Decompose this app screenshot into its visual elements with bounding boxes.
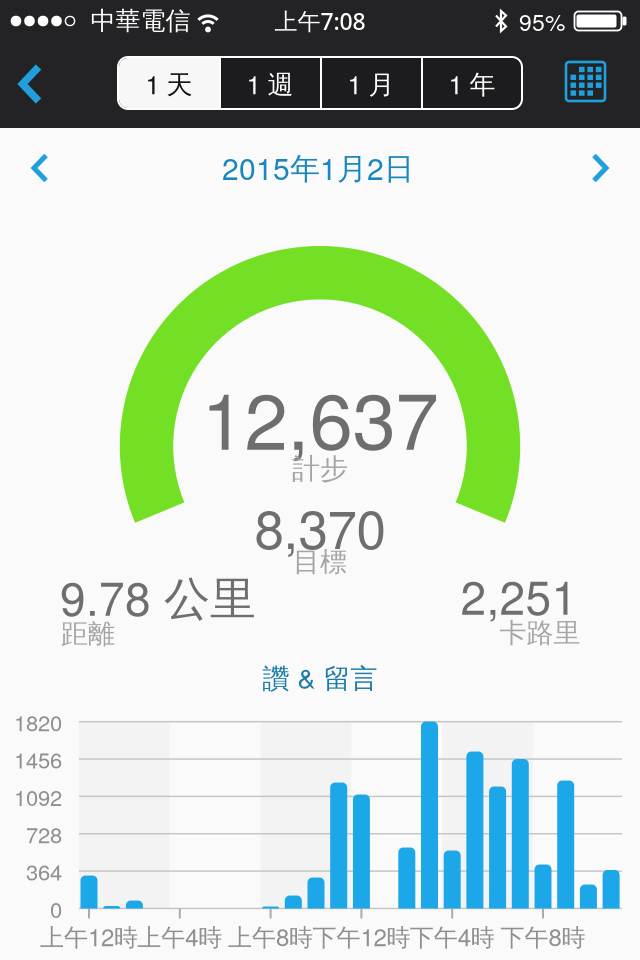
button[interactable] xyxy=(30,151,52,184)
button[interactable]: 1 週 xyxy=(219,57,320,109)
staticText: 1 週 xyxy=(246,64,293,102)
staticText: 計步 xyxy=(292,451,348,487)
staticText: 上午4時 xyxy=(137,919,222,953)
staticText: 2015年1月2日 xyxy=(222,145,414,188)
button[interactable]: 1 天 xyxy=(118,57,219,109)
staticText: 12,637 xyxy=(201,360,438,472)
staticText: 8,370 xyxy=(254,488,385,564)
staticText: 上午7:08 xyxy=(274,5,365,37)
staticText: 95% xyxy=(519,4,565,37)
button[interactable]: 1 年 xyxy=(421,57,522,109)
staticText: 9.78 公里 xyxy=(60,563,256,629)
staticText: 728 xyxy=(26,818,62,849)
staticText: 1 月 xyxy=(347,64,394,102)
button[interactable]: 讚 & 留言 xyxy=(254,658,385,696)
staticText: 上午8時 xyxy=(228,919,313,953)
staticText: 上午12時 xyxy=(40,919,138,953)
staticText: 距離 xyxy=(61,617,115,651)
staticText: 1456 xyxy=(14,743,62,775)
button[interactable] xyxy=(565,61,605,101)
staticText: 1 年 xyxy=(448,64,495,102)
staticText: 卡路里 xyxy=(499,616,580,650)
staticText: 下午4時 xyxy=(410,919,495,953)
staticText: 2,251 xyxy=(460,562,577,628)
staticText: 1820 xyxy=(14,706,62,737)
staticText: 目標 xyxy=(293,545,347,579)
button[interactable] xyxy=(588,151,610,184)
staticText: 0 xyxy=(50,893,62,924)
staticText: 中華電信 xyxy=(90,5,190,37)
staticText: 1 天 xyxy=(145,64,192,102)
staticText: 下午12時 xyxy=(312,919,410,953)
staticText: 1092 xyxy=(14,781,62,812)
button[interactable] xyxy=(8,58,52,110)
staticText: 下午8時 xyxy=(500,919,585,953)
button[interactable]: 1 月 xyxy=(320,57,421,109)
staticText: 364 xyxy=(26,855,62,887)
staticText: 讚 & 留言 xyxy=(262,658,377,696)
